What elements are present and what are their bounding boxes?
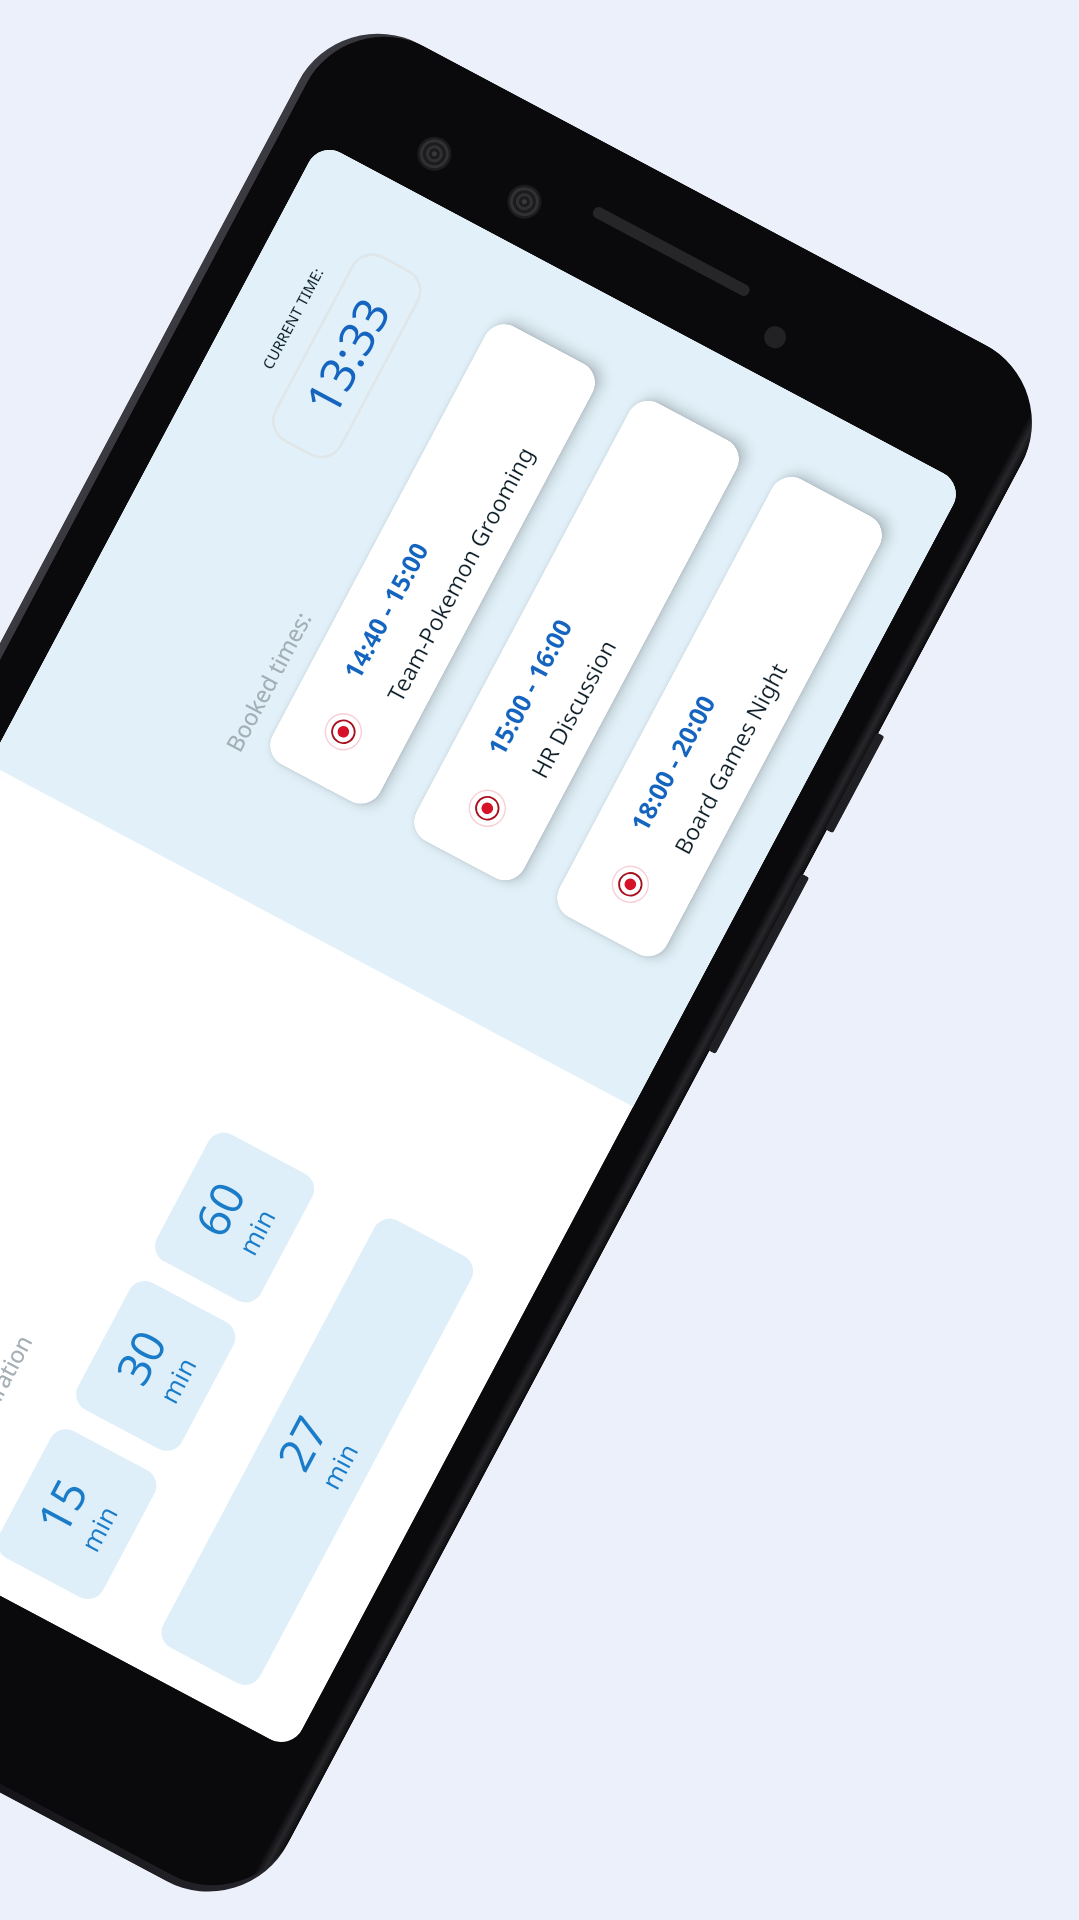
staticText: min — [229, 1202, 283, 1261]
staticText: 14:40 - 15:00 — [335, 536, 435, 684]
staticText: Board Games Night — [666, 656, 794, 859]
staticText: 15 — [21, 1467, 102, 1544]
staticText: Duration — [0, 1329, 39, 1428]
staticText: HR Discussion — [523, 633, 622, 783]
staticText: 27 — [262, 1405, 342, 1481]
staticText: Booked times: — [218, 605, 318, 757]
other: Recording — [605, 859, 656, 910]
staticText: 18:00 - 20:00 — [622, 689, 722, 837]
staticText: Team-Pokemon Grooming — [379, 440, 540, 706]
button[interactable]: 13:33 — [263, 245, 430, 467]
staticText: 13:33 — [289, 286, 404, 425]
staticText: 15:00 - 16:00 — [479, 612, 579, 761]
button[interactable]: 15 — [0, 1423, 163, 1605]
staticText: min — [151, 1350, 204, 1409]
button[interactable]: Recording — [549, 469, 890, 964]
staticText: min — [312, 1436, 366, 1495]
staticText: min — [72, 1498, 125, 1557]
other: Recording — [462, 783, 513, 834]
button[interactable]: 27 — [155, 1212, 479, 1691]
button[interactable]: 30 — [70, 1275, 242, 1457]
other: Recording — [318, 706, 369, 757]
staticText: 60 — [179, 1171, 260, 1247]
staticText: CURRENT TIME: — [257, 264, 327, 373]
button[interactable]: Recording — [406, 393, 747, 888]
staticText: 30 — [100, 1319, 181, 1395]
button[interactable]: Recording — [262, 316, 603, 812]
button[interactable]: 60 — [149, 1126, 320, 1309]
